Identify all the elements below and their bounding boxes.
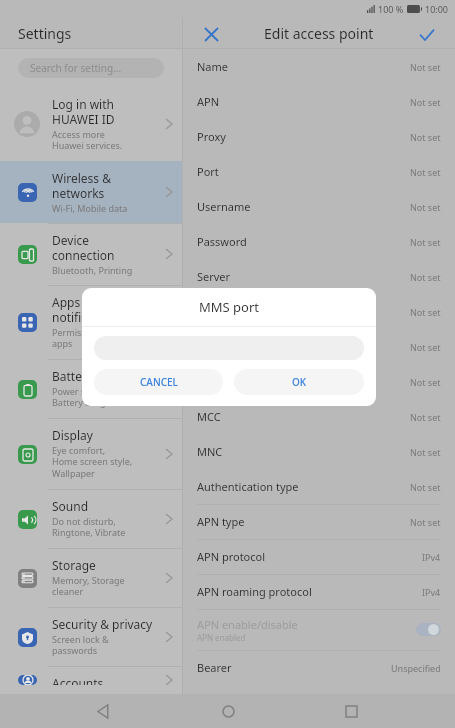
- staticText: Sound: [52, 498, 89, 514]
- button[interactable]: Save: [413, 20, 441, 48]
- staticText: Not set: [410, 271, 441, 283]
- staticText: Not set: [410, 306, 441, 318]
- button[interactable]: MMS port: [183, 364, 455, 399]
- button[interactable]: Storage: [0, 548, 182, 607]
- staticText: MMS port: [197, 374, 248, 389]
- staticText: OK: [292, 375, 307, 389]
- staticText: Not set: [410, 341, 441, 353]
- staticText: Apps & notifications: [52, 294, 122, 325]
- button[interactable]: Log in with HUAWEI ID: [0, 87, 182, 161]
- button[interactable]: Search for setting...: [18, 58, 164, 78]
- button[interactable]: APN roaming protocol: [183, 574, 455, 609]
- staticText: MMS port: [199, 298, 260, 316]
- button[interactable]: Back: [84, 694, 124, 728]
- button[interactable]: APN: [183, 84, 455, 119]
- button[interactable]: MCC: [183, 399, 455, 434]
- staticText: Storage: [52, 557, 96, 573]
- button[interactable]: MMS proxy: [183, 329, 455, 364]
- staticText: CANCEL: [140, 375, 178, 389]
- staticText: Screen lock & passwords: [52, 633, 109, 657]
- staticText: Device connection: [52, 232, 115, 263]
- staticText: APN type: [197, 514, 245, 529]
- staticText: Eye comfort, Home screen style, Wallpape…: [52, 444, 133, 480]
- staticText: Bearer: [197, 660, 232, 675]
- button[interactable]: MMSC: [183, 294, 455, 329]
- staticText: Memory, Storage cleaner: [52, 574, 125, 598]
- staticText: APN roaming protocol: [197, 584, 312, 599]
- staticText: Accounts: [52, 675, 104, 685]
- staticText: Power saving mode, Battery usage: [52, 385, 138, 409]
- button[interactable]: APN enable/disable: [183, 609, 455, 650]
- staticText: Not set: [410, 481, 441, 493]
- staticText: Display: [52, 427, 93, 443]
- staticText: Unspecified: [391, 662, 441, 674]
- button[interactable]: Port: [183, 154, 455, 189]
- staticText: APN: [197, 94, 220, 109]
- button[interactable]: Server: [183, 259, 455, 294]
- staticText: Wireless & networks: [52, 170, 112, 201]
- staticText: Not set: [410, 236, 441, 248]
- staticText: Proxy: [197, 129, 226, 144]
- button[interactable]: Security & privacy: [0, 607, 182, 666]
- staticText: APN enabled: [197, 632, 246, 643]
- button[interactable]: MNC: [183, 434, 455, 469]
- staticText: Not set: [410, 61, 441, 73]
- staticText: Security & privacy: [52, 616, 153, 632]
- staticText: Settings: [18, 24, 72, 43]
- staticText: APN protocol: [197, 549, 266, 564]
- staticText: Battery: [52, 368, 94, 384]
- staticText: Username: [197, 199, 251, 214]
- staticText: 100 %: [378, 3, 404, 15]
- staticText: Do not disturb, Ringtone, Vibrate: [52, 515, 126, 539]
- button[interactable]: CANCEL: [94, 369, 223, 395]
- button[interactable]: Display: [0, 418, 182, 489]
- button[interactable]: Apps & notifications: [0, 285, 182, 359]
- button[interactable]: Home: [208, 694, 248, 728]
- staticText: Edit access point: [264, 24, 374, 43]
- staticText: IPv4: [422, 586, 441, 598]
- button[interactable]: OK: [234, 369, 364, 395]
- button[interactable]: Bearer: [183, 650, 455, 685]
- staticText: Password: [197, 234, 247, 249]
- staticText: Port: [197, 164, 219, 179]
- staticText: Not set: [410, 201, 441, 213]
- staticText: Name: [197, 59, 229, 74]
- button[interactable]: Sound: [0, 489, 182, 548]
- staticText: Permissions, Default apps: [52, 326, 139, 350]
- staticText: APN enable/disable: [197, 617, 298, 632]
- button[interactable]: Wireless & networks: [0, 161, 182, 223]
- button[interactable]: Close: [197, 20, 225, 48]
- button[interactable]: APN protocol: [183, 539, 455, 574]
- staticText: Bluetooth, Printing: [52, 264, 133, 276]
- staticText: MCC: [197, 409, 221, 424]
- staticText: MNC: [197, 444, 223, 459]
- button[interactable]: Proxy: [183, 119, 455, 154]
- staticText: Search for setting...: [30, 61, 122, 75]
- staticText: Authentication type: [197, 479, 299, 494]
- button[interactable]: Recents: [331, 694, 371, 728]
- button[interactable]: Authentication type: [183, 469, 455, 504]
- staticText: Not set: [410, 96, 441, 108]
- button[interactable]: Password: [183, 224, 455, 259]
- button[interactable]: Battery: [0, 359, 182, 418]
- staticText: Server: [197, 269, 231, 284]
- staticText: 10:00: [425, 3, 449, 15]
- other: APN enable/disable toggle: [416, 623, 441, 636]
- staticText: Log in with HUAWEI ID: [52, 96, 115, 127]
- staticText: Not set: [410, 446, 441, 458]
- button[interactable]: APN type: [183, 504, 455, 539]
- staticText: Wi-Fi, Mobile data: [52, 202, 128, 214]
- staticText: Not set: [410, 411, 441, 423]
- staticText: Not set: [410, 516, 441, 528]
- staticText: Access more Huawei services.: [52, 128, 123, 152]
- staticText: MMSC: [197, 304, 230, 319]
- button[interactable]: Username: [183, 189, 455, 224]
- button[interactable]: Accounts: [0, 666, 182, 694]
- button[interactable]: Name: [183, 49, 455, 84]
- staticText: IPv4: [422, 551, 441, 563]
- staticText: Not set: [410, 131, 441, 143]
- staticText: Not set: [410, 166, 441, 178]
- button[interactable]: Device connection: [0, 223, 182, 285]
